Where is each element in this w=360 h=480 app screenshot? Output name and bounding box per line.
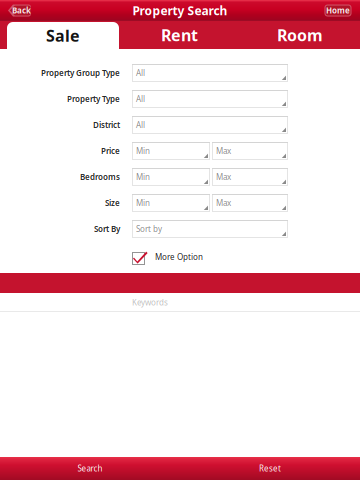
staticText: Keywords: [132, 297, 168, 308]
staticText: Reset: [259, 463, 281, 474]
staticText: Sort By: [94, 224, 120, 234]
staticText: All: [136, 94, 145, 104]
button[interactable]: Rent: [119, 21, 240, 49]
staticText: Home: [326, 5, 350, 16]
staticText: More Option: [155, 252, 203, 262]
staticText: Min: [136, 198, 150, 208]
button[interactable]: Back: [0, 4, 31, 16]
staticText: Search: [77, 463, 102, 474]
button[interactable]: Keywords: [0, 293, 360, 312]
staticText: Max: [216, 146, 231, 156]
button[interactable]: All: [132, 116, 288, 134]
button[interactable]: All: [132, 64, 288, 82]
staticText: Property Search: [132, 2, 227, 18]
staticText: Sort by: [136, 224, 162, 234]
button[interactable]: Search: [0, 457, 180, 480]
staticText: All: [136, 68, 145, 78]
button[interactable]: Max: [212, 142, 288, 160]
staticText: Max: [216, 172, 231, 182]
staticText: Min: [136, 146, 150, 156]
staticText: Price: [101, 146, 120, 156]
button[interactable]: Min: [132, 142, 210, 160]
staticText: Property Group Type: [41, 68, 120, 78]
staticText: Back: [12, 5, 31, 16]
button[interactable]: Sort by: [132, 220, 288, 238]
staticText: Rent: [161, 24, 198, 46]
button[interactable]: Min: [132, 194, 210, 212]
button[interactable]: More Option: [0, 249, 360, 265]
button[interactable]: Home: [325, 5, 360, 16]
staticText: District: [93, 120, 120, 130]
staticText: All: [136, 120, 145, 130]
button[interactable]: Max: [212, 168, 288, 186]
staticText: Sale: [46, 25, 80, 46]
staticText: Min: [136, 172, 150, 182]
staticText: Room: [277, 24, 323, 46]
button[interactable]: Room: [240, 21, 360, 49]
button[interactable]: Min: [132, 168, 210, 186]
staticText: Bedrooms: [80, 172, 120, 182]
button[interactable]: Max: [212, 194, 288, 212]
staticText: Max: [216, 198, 231, 208]
button[interactable]: Reset: [180, 457, 360, 480]
staticText: Property Type: [67, 94, 120, 104]
button[interactable]: Sale: [0, 21, 119, 49]
button[interactable]: All: [132, 90, 288, 108]
staticText: Size: [105, 198, 120, 208]
